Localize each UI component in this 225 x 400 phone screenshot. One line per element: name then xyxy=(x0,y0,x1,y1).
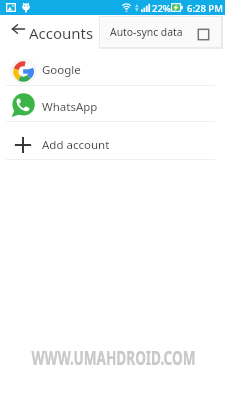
staticText: 6:28 PM xyxy=(187,2,223,15)
button[interactable]: Google xyxy=(0,55,225,85)
staticText: Add account xyxy=(42,137,110,153)
button[interactable]: Navigate up xyxy=(2,15,30,43)
staticText: 22% xyxy=(152,2,171,15)
button[interactable]: WhatsApp xyxy=(0,92,225,122)
button[interactable]: Auto-sync data xyxy=(100,17,221,47)
staticText: WWW.UMAHDROID.COM xyxy=(31,344,196,371)
staticText: Auto-sync data xyxy=(110,25,183,39)
staticText: Google xyxy=(42,62,81,78)
staticText: WhatsApp xyxy=(42,99,98,115)
button[interactable]: Add account xyxy=(0,130,225,160)
staticText: Accounts xyxy=(29,23,94,43)
